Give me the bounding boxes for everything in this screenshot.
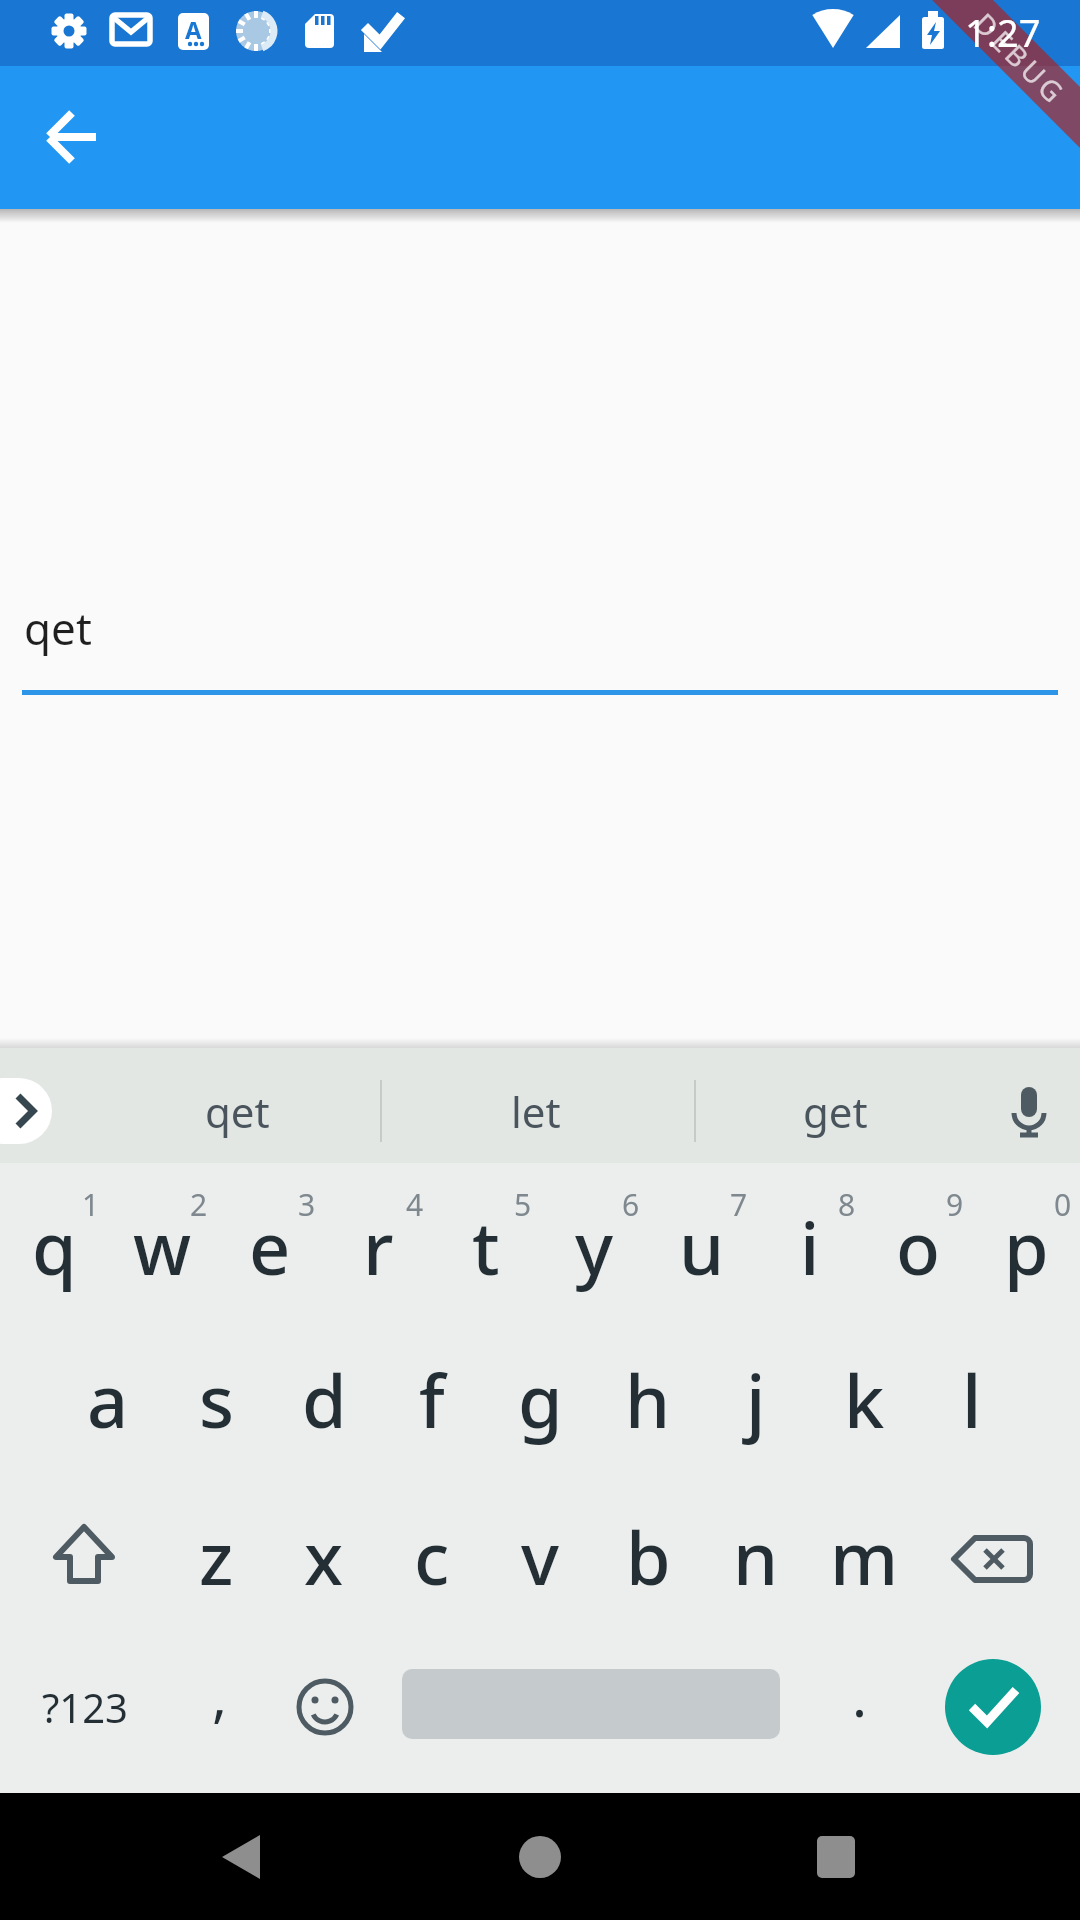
button[interactable] [28,93,116,181]
staticText: DEBUG [966,4,1075,113]
staticText: a [87,1351,129,1449]
staticText: get [803,1083,868,1140]
staticText: l [962,1351,982,1449]
staticText: A [185,13,202,46]
button[interactable]: f [378,1325,486,1475]
button[interactable]: a [54,1325,162,1475]
button[interactable]: c [378,1482,486,1632]
staticText: qet [24,598,92,658]
staticText: g [518,1351,563,1449]
button[interactable]: g [486,1325,594,1475]
button[interactable]: qet [22,560,1058,690]
staticText: 5 [514,1184,532,1224]
staticText: 3 [298,1184,316,1224]
staticText: k [844,1351,885,1449]
button[interactable]: u [648,1172,756,1322]
staticText: let [511,1083,561,1140]
staticText: m [830,1508,899,1606]
button[interactable]: r [324,1172,432,1322]
button[interactable]: b [594,1482,702,1632]
button[interactable]: p [972,1172,1080,1322]
button[interactable]: y [540,1172,648,1322]
staticText: i [800,1198,820,1296]
button[interactable] [30,1505,138,1613]
staticText: r [363,1198,394,1296]
button[interactable]: i [756,1172,864,1322]
staticText: . [852,1657,868,1733]
staticText: 8 [838,1184,856,1224]
button[interactable] [998,1080,1060,1142]
button[interactable] [271,1653,379,1761]
button[interactable]: v [486,1482,594,1632]
button[interactable] [0,1078,52,1144]
staticText: n [733,1508,779,1606]
staticText: o [896,1198,940,1296]
button[interactable]: . [810,1625,910,1765]
staticText: z [199,1508,234,1606]
staticText: 1 [82,1184,100,1224]
staticText: e [249,1198,291,1296]
button[interactable]: e [216,1172,324,1322]
button[interactable]: x [270,1482,378,1632]
button[interactable]: j [702,1325,810,1475]
button[interactable]: n [702,1482,810,1632]
staticText: 4 [406,1184,424,1224]
button[interactable]: ?123 [0,1637,170,1777]
staticText: 7 [730,1184,748,1224]
button[interactable] [180,1810,300,1906]
staticText: p [1004,1198,1049,1296]
button[interactable]: h [594,1325,702,1475]
button[interactable]: s [162,1325,270,1475]
button[interactable] [776,1810,896,1906]
staticText: t [472,1198,500,1296]
staticText: x [304,1508,344,1606]
button[interactable]: k [810,1325,918,1475]
staticText: 6 [622,1184,640,1224]
button[interactable]: , [170,1625,270,1765]
button[interactable]: get [705,1066,965,1156]
staticText: v [521,1508,559,1606]
staticText: b [626,1508,671,1606]
staticText: c [414,1508,450,1606]
staticText: q [32,1198,77,1296]
button[interactable]: z [162,1482,270,1632]
button[interactable] [941,1505,1053,1613]
staticText: f [419,1351,445,1449]
staticText: qet [205,1083,270,1140]
staticText: ?123 [42,1680,128,1734]
staticText: u [679,1198,725,1296]
button[interactable]: d [270,1325,378,1475]
button[interactable]: o [864,1172,972,1322]
staticText: h [625,1351,671,1449]
staticText: 1:27 [965,6,1041,58]
staticText: s [199,1351,234,1449]
button[interactable]: let [406,1066,666,1156]
staticText: , [212,1657,228,1733]
staticText: w [133,1198,192,1296]
staticText: 2 [190,1184,208,1224]
staticText: d [302,1351,347,1449]
button[interactable]: q [0,1172,108,1322]
staticText: y [575,1198,614,1296]
staticText: j [746,1351,766,1449]
button[interactable]: w [108,1172,216,1322]
button[interactable] [945,1659,1041,1755]
button[interactable]: t [432,1172,540,1322]
button[interactable] [480,1810,600,1906]
staticText: 9 [946,1184,964,1224]
button[interactable]: l [918,1325,1026,1475]
button[interactable]: qet [107,1066,367,1156]
staticText: 0 [1054,1184,1072,1224]
button[interactable]: m [810,1482,918,1632]
